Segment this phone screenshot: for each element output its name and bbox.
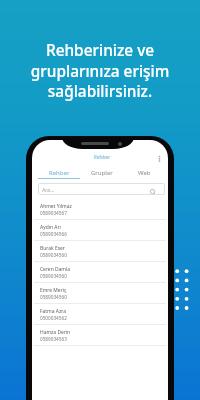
button[interactable]: Web bbox=[123, 168, 166, 179]
button[interactable]: Ara... bbox=[38, 183, 165, 195]
staticText: Ara... bbox=[42, 186, 55, 193]
staticText: Hamza Derin bbox=[40, 329, 71, 336]
staticText: Web bbox=[138, 169, 151, 177]
staticText: Emre Meriç bbox=[40, 287, 67, 294]
button[interactable]: Ceren Damla bbox=[32, 262, 168, 283]
staticText: 0589034560 bbox=[40, 294, 67, 300]
button[interactable]: More options bbox=[155, 154, 164, 163]
button[interactable]: Emre Meriç bbox=[32, 283, 168, 304]
staticText: 0589034567 bbox=[40, 210, 67, 216]
staticText: 0589034563 bbox=[40, 336, 67, 342]
staticText: Burak Eser bbox=[40, 245, 65, 252]
button[interactable]: Fatma Azra bbox=[32, 304, 168, 325]
button[interactable]: Burak Eser bbox=[32, 241, 168, 262]
staticText: 0500034562 bbox=[40, 315, 67, 321]
button[interactable]: Gruplar bbox=[80, 168, 123, 179]
staticText: Rehber bbox=[49, 169, 70, 177]
staticText: Ceren Damla bbox=[40, 266, 70, 273]
staticText: 0589034560 bbox=[40, 273, 67, 279]
staticText: Rehber bbox=[34, 154, 168, 161]
staticText: 0589034566 bbox=[40, 231, 67, 237]
staticText: Gruplar bbox=[91, 169, 113, 177]
other: Search bbox=[150, 189, 157, 196]
button[interactable]: Rehber bbox=[38, 168, 80, 179]
staticText: 0589034560 bbox=[40, 252, 67, 258]
staticText: Rehberinize ve gruplarınıza erişim sağla… bbox=[0, 40, 200, 101]
button[interactable]: Hamza Derin bbox=[32, 325, 168, 346]
button[interactable]: Ahmet Yılmaz bbox=[32, 199, 168, 220]
staticText: Ahmet Yılmaz bbox=[40, 203, 72, 210]
button[interactable]: Aydın Arı bbox=[32, 220, 168, 241]
staticText: Fatma Azra bbox=[40, 308, 66, 315]
staticText: Aydın Arı bbox=[40, 224, 61, 231]
